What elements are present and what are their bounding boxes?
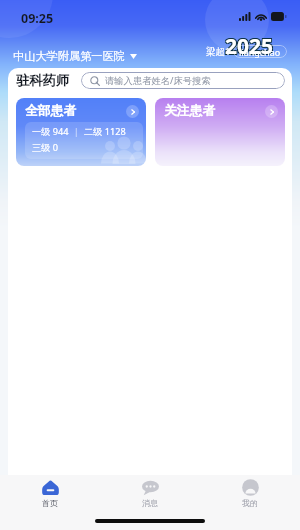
button[interactable]: 全部患者 xyxy=(16,98,146,166)
button[interactable]: 消息 xyxy=(100,475,200,513)
staticText: 二级 1128 xyxy=(84,125,126,138)
button[interactable]: 中山大学附属第一医院 xyxy=(11,47,139,65)
staticText: 请输入患者姓名/床号搜索 xyxy=(105,74,211,87)
staticText: 一级 944 xyxy=(32,125,69,138)
staticText: 2025 xyxy=(225,32,274,61)
staticText: liangchao xyxy=(239,46,281,58)
staticText: 我的 xyxy=(242,498,258,508)
staticText: 2025 xyxy=(225,32,274,61)
staticText: 梁超1 xyxy=(206,45,231,58)
staticText: 2025 xyxy=(226,32,275,61)
staticText: 驻科药师 xyxy=(16,72,70,89)
button[interactable]: 请输入患者姓名/床号搜索 xyxy=(81,72,285,89)
button[interactable]: 我的 xyxy=(200,475,300,513)
staticText: 2025 xyxy=(225,31,274,60)
staticText: 消息 xyxy=(142,498,158,508)
staticText: 2025 xyxy=(225,33,274,62)
staticText: 首页 xyxy=(42,498,58,508)
staticText: 2025 xyxy=(224,32,273,61)
staticText: 2025 xyxy=(226,31,275,60)
staticText: 三级 0 xyxy=(32,141,59,154)
other: 查看全部患者 xyxy=(126,105,139,118)
button[interactable]: 关注患者 xyxy=(155,98,285,166)
button[interactable]: 首页 xyxy=(0,475,100,513)
staticText: 2025 xyxy=(224,31,273,60)
other: 查看关注患者 xyxy=(265,105,278,118)
staticText: | xyxy=(69,125,84,138)
staticText: 2025 xyxy=(226,33,275,62)
button[interactable]: 梁超1 xyxy=(206,45,287,58)
staticText: 关注患者 xyxy=(164,103,216,119)
staticText: 09:25 xyxy=(21,10,54,27)
staticText: 中山大学附属第一医院 xyxy=(13,49,125,63)
staticText: 2025 xyxy=(224,33,273,62)
staticText: 全部患者 xyxy=(25,103,77,119)
